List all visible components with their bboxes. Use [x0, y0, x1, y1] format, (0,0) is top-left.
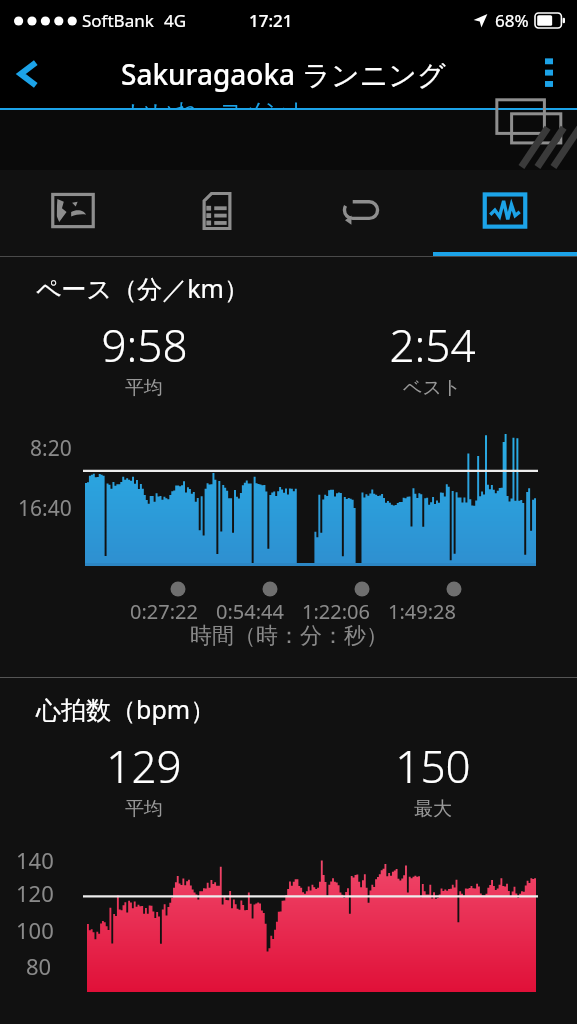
staticText: 16:40: [18, 494, 72, 523]
staticText: 100: [16, 915, 54, 945]
staticText: 9:58: [101, 315, 188, 375]
button[interactable]: More options: [521, 46, 577, 102]
staticText: 2:54: [389, 315, 476, 375]
staticText: 1:49:28: [388, 598, 456, 625]
staticText: 平均: [125, 797, 163, 821]
staticText: SoftBank: [82, 9, 154, 32]
staticText: 0:54:44: [216, 598, 284, 625]
staticText: 0:27:22: [130, 598, 198, 625]
staticText: 120: [16, 878, 54, 908]
staticText: 最大: [414, 797, 452, 821]
staticText: 8:20: [30, 434, 72, 463]
staticText: ペース（分／km）: [36, 271, 249, 305]
staticText: 4G: [164, 9, 187, 32]
staticText: 17:21: [249, 9, 293, 32]
staticText: 時間（時：分：秒）: [190, 622, 388, 650]
button[interactable]: Map tab: [0, 170, 145, 256]
button[interactable]: Laps tab: [289, 170, 433, 256]
staticText: Sakuragaoka ランニング: [121, 55, 446, 93]
staticText: いいね コメント: [130, 94, 310, 110]
staticText: 1:22:06: [302, 598, 370, 625]
staticText: 68%: [495, 9, 529, 32]
button[interactable]: Details tab: [145, 170, 289, 256]
staticText: 129: [106, 736, 182, 796]
staticText: ベスト: [403, 376, 462, 400]
staticText: 平均: [125, 376, 163, 400]
staticText: 150: [395, 736, 471, 796]
button[interactable]: Charts tab: [433, 170, 577, 256]
button[interactable]: Back: [0, 45, 58, 103]
staticText: 心拍数（bpm）: [36, 692, 216, 726]
staticText: 140: [16, 845, 54, 871]
staticText: 80: [26, 951, 52, 981]
